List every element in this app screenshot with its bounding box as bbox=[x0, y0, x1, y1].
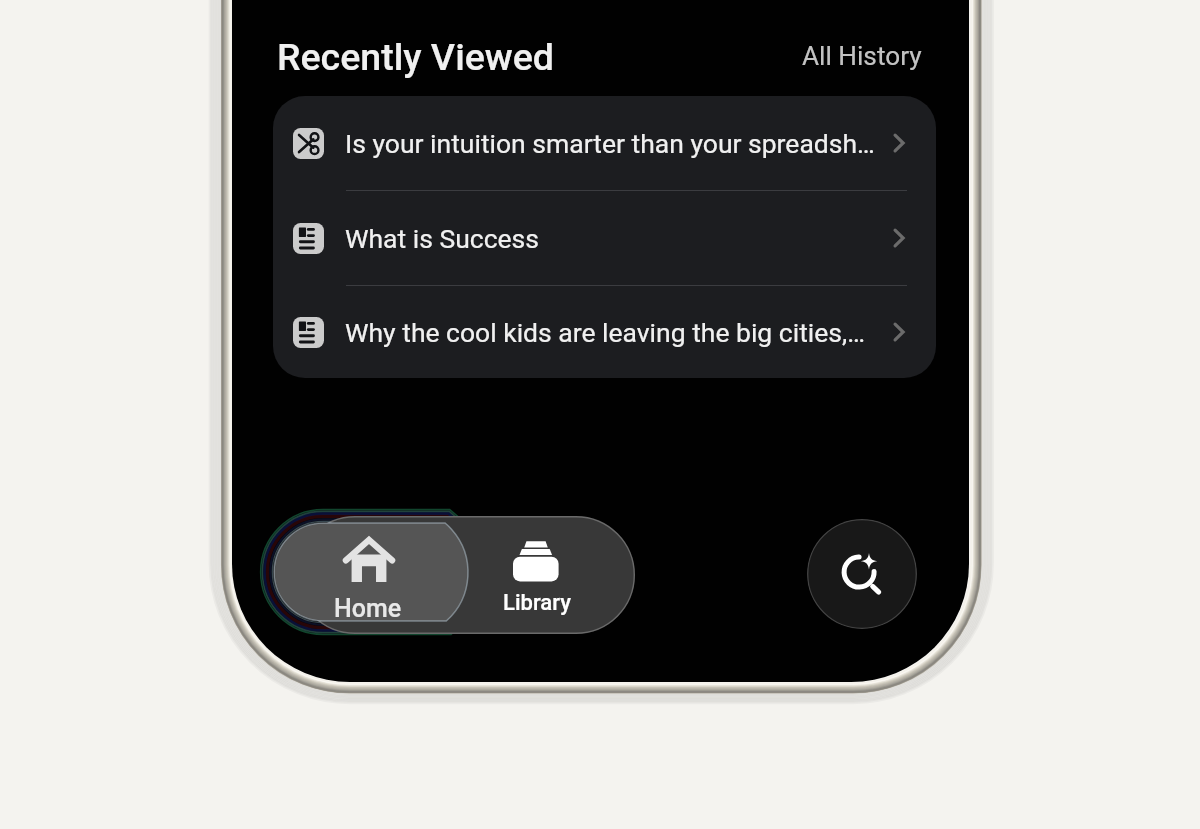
staticText: All History bbox=[802, 41, 922, 72]
staticText: Is your intuition smarter than your spre… bbox=[345, 128, 885, 159]
staticText: Why the cool kids are leaving the big ci… bbox=[345, 317, 885, 348]
staticText: Library bbox=[503, 590, 571, 616]
button[interactable]: Why the cool kids are leaving the big ci… bbox=[273, 286, 936, 378]
button[interactable]: All History bbox=[780, 34, 922, 78]
staticText: Recently Viewed bbox=[277, 35, 555, 79]
button[interactable] bbox=[258, 495, 494, 651]
button[interactable]: AI Search bbox=[807, 519, 917, 629]
button[interactable]: Is your intuition smarter than your spre… bbox=[273, 96, 936, 190]
staticText: What is Success bbox=[345, 223, 885, 254]
button[interactable]: What is Success bbox=[273, 191, 936, 285]
staticText: Home bbox=[334, 594, 402, 623]
button[interactable]: Library bbox=[481, 516, 593, 646]
